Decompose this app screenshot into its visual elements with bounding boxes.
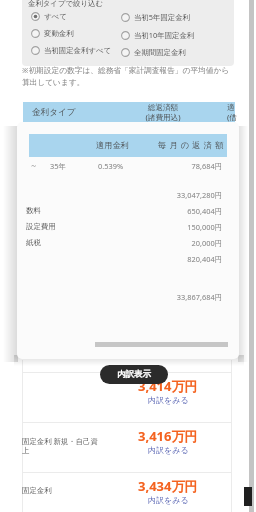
staticText: 33,047,280円 (142, 190, 222, 200)
staticText: 固定金利 (22, 486, 127, 495)
staticText: 内訳をみる (148, 395, 189, 405)
staticText: 650,404円 (142, 206, 222, 216)
staticText: 変動金利 (44, 29, 74, 38)
staticText: 78,684円 (162, 161, 222, 171)
staticText: 毎月の返済額 (158, 140, 227, 150)
staticText: 内訳をみる (148, 495, 189, 505)
button[interactable]: すべて (31, 12, 67, 21)
button[interactable]: 3,414万円 (22, 372, 232, 422)
staticText: 設定費用 (26, 222, 56, 231)
staticText: 内訳をみる (148, 445, 189, 455)
staticText: 0.539% (98, 161, 124, 171)
button[interactable]: 変動金利 (31, 29, 74, 38)
staticText: 3,414万円 (138, 377, 198, 395)
staticText: 数料 (26, 206, 41, 215)
button[interactable]: 固定金利 新規・自己資 上 (22, 422, 232, 472)
staticText: 内訳表示 (117, 369, 151, 380)
staticText: 総返済額 (諸費用込) (135, 103, 191, 123)
staticText: 全期間固定金利 (134, 48, 186, 57)
staticText: ※初期設定の数字は、総務省「家計調査報告」の平均値から 算出しています。 (22, 65, 230, 87)
other: Scroll (249, 0, 254, 512)
staticText: すべて (44, 12, 67, 21)
staticText: 固定金利 新規・自己資 上 (22, 436, 127, 456)
staticText: 33,867,684円 (142, 292, 222, 302)
button[interactable]: 当初10年固定金利 (121, 30, 195, 40)
button[interactable]: 当初5年固定金利 (121, 12, 190, 22)
staticText: 35年 (50, 161, 66, 171)
staticText: 820,404円 (142, 254, 222, 264)
staticText: 金利タイプ (32, 107, 76, 118)
button[interactable]: 固定金利 (22, 472, 232, 512)
staticText: 適 (借 (227, 103, 237, 123)
staticText: 当初固定金利すべて (44, 46, 112, 55)
staticText: 当初5年固定金利 (134, 12, 190, 22)
staticText: 適用金利 (96, 140, 129, 150)
button[interactable]: 当初固定金利すべて (31, 46, 112, 55)
staticText: ～ (30, 161, 38, 170)
button[interactable]: 全期間固定金利 (121, 48, 186, 57)
staticText: 3,434万円 (138, 477, 198, 495)
staticText: 3,416万円 (138, 427, 198, 445)
staticText: 当初10年固定金利 (134, 30, 195, 40)
staticText: 20,000円 (142, 238, 222, 248)
button[interactable]: 内訳表示 (100, 365, 168, 384)
staticText: 紙税 (26, 238, 41, 247)
staticText: 金利タイプで絞り込む (28, 0, 103, 8)
staticText: 150,000円 (142, 222, 222, 232)
